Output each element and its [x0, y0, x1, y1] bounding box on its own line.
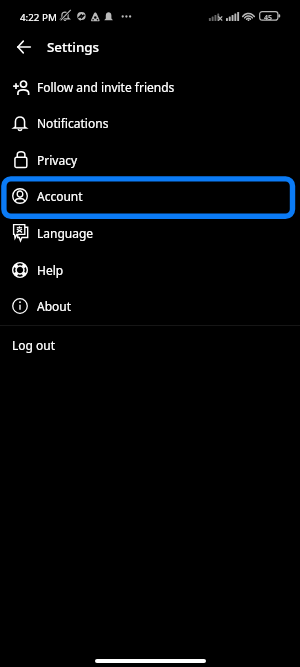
staticText: Notifications [37, 115, 109, 131]
staticText: Settings [47, 38, 100, 56]
button[interactable]: Privacy [0, 141, 300, 178]
staticText: 45 [264, 13, 273, 23]
button[interactable]: Account [0, 177, 300, 214]
staticText: Privacy [37, 152, 78, 168]
staticText: Account [37, 188, 83, 204]
staticText: About [37, 298, 72, 314]
button[interactable]: Help [0, 251, 300, 288]
button[interactable]: Follow and invite friends [0, 68, 300, 105]
button[interactable]: Log out [0, 326, 300, 363]
staticText: 4:22 PM [20, 11, 57, 24]
button[interactable]: Notifications [0, 104, 300, 141]
staticText: Help [37, 262, 64, 278]
button[interactable]: About [0, 287, 300, 324]
button[interactable]: Back [11, 34, 36, 59]
staticText: Language [37, 225, 94, 241]
staticText: Log out [12, 337, 56, 353]
button[interactable]: Language [0, 214, 300, 251]
staticText: Follow and invite friends [37, 79, 175, 95]
